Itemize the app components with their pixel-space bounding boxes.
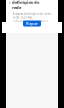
- staticText: ‹: [9, 0, 11, 6]
- staticText: Repor: [26, 21, 38, 26]
- staticText: Repor definições de rede: [12, 0, 39, 10]
- staticText: Todas as definições de rede serão repost…: [12, 12, 51, 19]
- staticText: incluindo as redes Wi-Fi e palavras-pass…: [12, 20, 48, 27]
- button[interactable]: Repor: [23, 20, 41, 26]
